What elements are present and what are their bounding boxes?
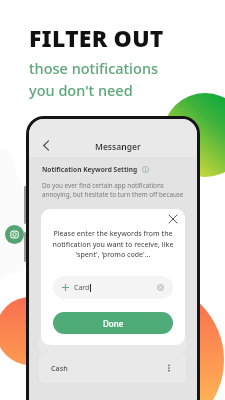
staticText: Done [103, 318, 124, 329]
button[interactable]: Close [169, 215, 177, 223]
staticText: Please enter the keywords from the notif… [43, 229, 183, 259]
staticText: you don't need [29, 80, 133, 100]
staticText: those notifications [29, 58, 159, 78]
button[interactable]: More options [165, 364, 173, 372]
button[interactable]: Cash [39, 353, 186, 383]
staticText: FILTER OUT [29, 22, 164, 53]
staticText: Do you ever find certain app notificatio… [42, 181, 164, 190]
staticText: Notification Keyword Setting [42, 165, 138, 174]
staticText: Card [74, 283, 90, 293]
button[interactable]: Camera [5, 225, 24, 244]
staticText: Messanger [95, 141, 141, 153]
button[interactable]: Clear [157, 284, 164, 291]
button[interactable]: Card [53, 276, 173, 299]
button[interactable]: Back [38, 137, 54, 153]
button[interactable]: Done [53, 312, 173, 334]
staticText: Cash [51, 363, 68, 373]
staticText: annoying, but hesitate to turn them off … [42, 190, 184, 199]
